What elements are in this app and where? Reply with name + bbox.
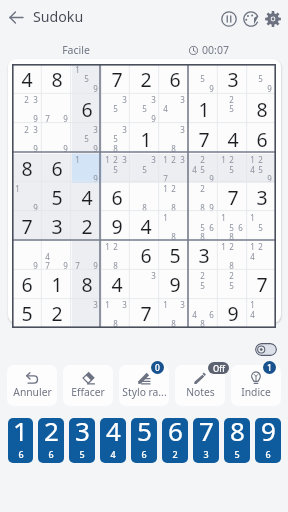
button[interactable]: 9 — [218, 299, 247, 328]
button[interactable]: 4 — [218, 124, 247, 154]
button[interactable]: 0 — [151, 361, 164, 374]
button[interactable]: 1 — [160, 212, 189, 241]
button[interactable]: 7 — [102, 64, 131, 94]
button[interactable]: Off — [208, 362, 229, 374]
button[interactable]: 2 — [42, 299, 72, 328]
button[interactable]: 8 — [224, 418, 250, 463]
button[interactable]: 2 — [189, 183, 218, 212]
button[interactable]: 6 — [247, 124, 276, 154]
button[interactable]: 8 — [247, 94, 276, 124]
button[interactable]: 2 — [189, 270, 218, 299]
button[interactable]: 1 — [72, 64, 102, 94]
button[interactable]: 9 — [102, 212, 131, 241]
button[interactable]: 5 — [189, 212, 218, 241]
button[interactable]: 2 — [38, 418, 64, 463]
button[interactable]: 1 — [8, 418, 33, 463]
button[interactable]: 6 — [160, 64, 189, 94]
button[interactable]: 4 — [100, 418, 126, 463]
button[interactable]: 7 — [72, 241, 102, 270]
button[interactable]: 7 — [218, 183, 247, 212]
button[interactable]: Back — [5, 6, 27, 28]
button[interactable]: 3 — [131, 270, 160, 299]
button[interactable]: 1 — [247, 241, 276, 270]
button[interactable]: 2 — [131, 64, 160, 94]
button[interactable]: 3 — [247, 183, 276, 212]
button[interactable]: 3 — [131, 154, 160, 183]
button[interactable]: 1 — [131, 124, 160, 154]
button[interactable]: 2 — [12, 94, 42, 124]
button[interactable]: 3 — [102, 94, 131, 124]
button[interactable]: 8 — [42, 64, 72, 94]
button[interactable]: 2 — [12, 124, 42, 154]
button[interactable]: 3 — [189, 241, 218, 270]
button[interactable]: 1 — [160, 183, 189, 212]
button[interactable]: 1 — [102, 299, 131, 328]
button[interactable]: 1 — [102, 154, 131, 183]
button[interactable]: 4 — [189, 299, 218, 328]
button[interactable]: 1 — [247, 154, 276, 183]
button[interactable]: 4 — [131, 212, 160, 241]
button[interactable]: 7 — [12, 212, 42, 241]
button[interactable]: 6 — [162, 418, 188, 463]
button[interactable]: 3 — [160, 94, 189, 124]
button[interactable]: 5 — [247, 64, 276, 94]
button[interactable]: 1 — [218, 241, 247, 270]
button[interactable]: 4 — [72, 183, 102, 212]
button[interactable]: 5 — [160, 241, 189, 270]
button[interactable]: 6 — [102, 183, 131, 212]
button[interactable]: Effacer — [63, 365, 113, 406]
button[interactable]: Notes — [175, 365, 225, 406]
button[interactable]: 6 — [131, 241, 160, 270]
button[interactable]: 1 — [247, 212, 276, 241]
button[interactable]: 5 — [42, 183, 72, 212]
button[interactable]: 2 — [218, 270, 247, 299]
button[interactable]: 4 — [102, 270, 131, 299]
button[interactable]: Theme — [240, 5, 262, 32]
button[interactable]: 9 — [255, 418, 281, 463]
button[interactable]: 4 — [12, 64, 42, 94]
button[interactable]: 3 — [72, 299, 102, 328]
button[interactable]: 7 — [131, 299, 160, 328]
button[interactable]: 1 — [263, 361, 276, 374]
button[interactable]: 8 — [72, 270, 102, 299]
button[interactable]: 1 — [160, 299, 189, 328]
button[interactable]: 3 — [102, 124, 131, 154]
button[interactable]: 5 — [131, 418, 157, 463]
button[interactable]: 9 — [42, 124, 72, 154]
button[interactable]: 9 — [160, 270, 189, 299]
button[interactable]: 7 — [247, 270, 276, 299]
button[interactable]: 1 — [247, 299, 276, 328]
button[interactable]: 3 — [72, 124, 102, 154]
button[interactable]: Settings — [262, 5, 284, 32]
button[interactable]: 6 — [12, 270, 42, 299]
button[interactable]: 3 — [42, 212, 72, 241]
button[interactable]: 1 — [102, 241, 131, 270]
button[interactable]: 7 — [193, 418, 219, 463]
button[interactable]: 1 — [42, 270, 72, 299]
button[interactable]: 9 — [12, 241, 42, 270]
button[interactable]: 8 — [12, 154, 42, 183]
button[interactable]: 2 — [189, 154, 218, 183]
button[interactable]: 1 — [218, 154, 247, 183]
button[interactable]: 3 — [131, 94, 160, 124]
button[interactable]: Indice — [231, 365, 281, 406]
button[interactable]: 6 — [42, 154, 72, 183]
button[interactable]: Annuler — [7, 365, 57, 406]
button[interactable]: 1 — [72, 154, 102, 183]
button[interactable]: 3 — [218, 64, 247, 94]
button[interactable]: 2 — [72, 212, 102, 241]
button[interactable]: 8 — [131, 183, 160, 212]
button[interactable]: Pause — [218, 5, 240, 32]
button[interactable]: Toggle notes — [255, 343, 277, 356]
button[interactable]: 1 — [218, 212, 247, 241]
button[interactable]: 3 — [69, 418, 95, 463]
button[interactable]: Stylo ra... — [119, 365, 169, 406]
button[interactable]: 6 — [72, 94, 102, 124]
button[interactable]: 1 — [160, 154, 189, 183]
button[interactable]: 7 — [189, 124, 218, 154]
button[interactable]: 3 — [160, 124, 189, 154]
button[interactable]: 2 — [218, 94, 247, 124]
button[interactable]: 7 — [42, 94, 72, 124]
button[interactable]: 5 — [189, 64, 218, 94]
button[interactable]: 5 — [12, 299, 42, 328]
